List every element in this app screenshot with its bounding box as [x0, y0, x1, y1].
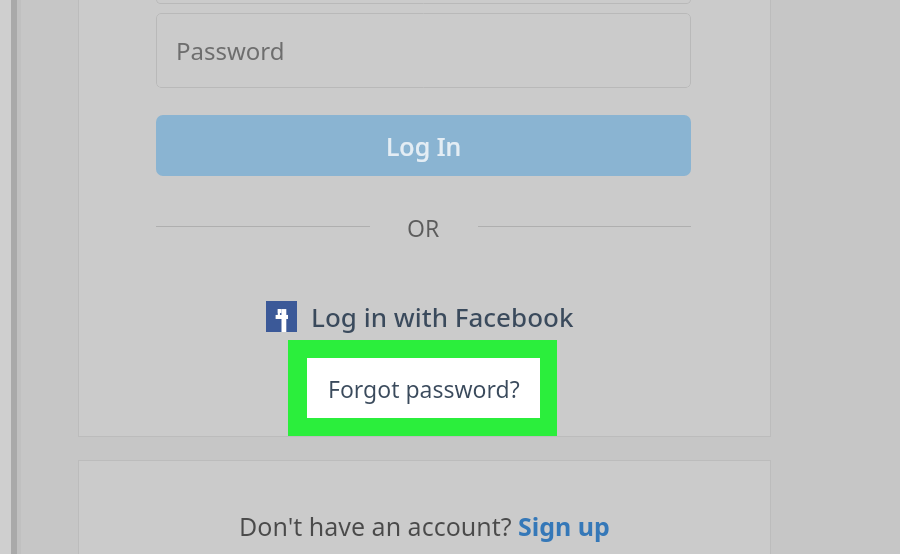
button[interactable]: Log In — [156, 115, 691, 176]
button[interactable]: Forgot password? — [307, 358, 540, 418]
other: Log in with Facebook — [266, 301, 297, 332]
staticText: Password — [176, 34, 285, 67]
staticText: Don't have an account? Sign up — [239, 509, 610, 543]
staticText: OR — [407, 212, 440, 243]
staticText: Forgot password? — [328, 373, 520, 404]
staticText: Log In — [386, 129, 462, 163]
button[interactable]: Log in with Facebook — [266, 298, 574, 334]
button[interactable]: Password — [156, 13, 691, 88]
staticText: Log in with Facebook — [311, 299, 574, 334]
button[interactable] — [156, 0, 691, 4]
